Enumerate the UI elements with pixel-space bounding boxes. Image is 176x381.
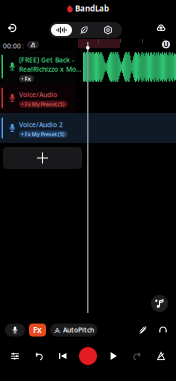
staticText: Fx <box>25 75 31 82</box>
staticText: RealRichizzo x Mo… <box>19 65 82 74</box>
button[interactable]: [FREE] Get Back - <box>0 50 76 83</box>
button[interactable]: Metronome <box>149 342 173 370</box>
button[interactable]: Undo <box>28 342 50 370</box>
staticText: Fx <box>33 325 42 335</box>
staticText: BandLab <box>75 3 109 14</box>
button[interactable]: Voice/Audio <box>0 83 76 113</box>
staticText: Fx My Preset (5) <box>25 101 65 108</box>
button[interactable]: Fx <box>29 323 46 336</box>
staticText: : <box>22 41 24 50</box>
staticText: 00:00 <box>3 41 21 50</box>
button[interactable]: Rewind <box>52 342 74 370</box>
button[interactable]: Record <box>75 342 101 370</box>
button[interactable]: Redo <box>126 342 148 370</box>
button[interactable]: Upload <box>150 17 172 39</box>
button[interactable]: AutoPitch <box>50 323 97 336</box>
button[interactable]: Tracks <box>51 24 72 36</box>
button[interactable]: Add sound <box>151 295 168 312</box>
button[interactable]: Back <box>0 17 24 39</box>
button[interactable]: Add track <box>3 147 82 169</box>
staticText: [FREE] Get Back - <box>19 55 74 64</box>
button[interactable]: Monitor <box>155 323 171 337</box>
button[interactable]: Voice/Audio 2 <box>0 113 76 143</box>
button[interactable]: Lyrics <box>72 24 96 36</box>
button[interactable]: Play <box>102 342 124 370</box>
button[interactable]: Settings <box>96 24 120 36</box>
staticText: Fx My Preset (5) <box>25 131 65 138</box>
staticText: Voice/Audio <box>19 90 57 99</box>
staticText: AutoPitch <box>63 326 94 334</box>
button[interactable]: Mixer <box>3 342 27 370</box>
button[interactable]: Mute <box>135 323 151 337</box>
staticText: U <box>163 40 168 49</box>
button[interactable]: Input <box>5 323 25 336</box>
staticText: Voice/Audio 2 <box>19 120 63 129</box>
button[interactable]: Metronome <box>27 41 39 48</box>
